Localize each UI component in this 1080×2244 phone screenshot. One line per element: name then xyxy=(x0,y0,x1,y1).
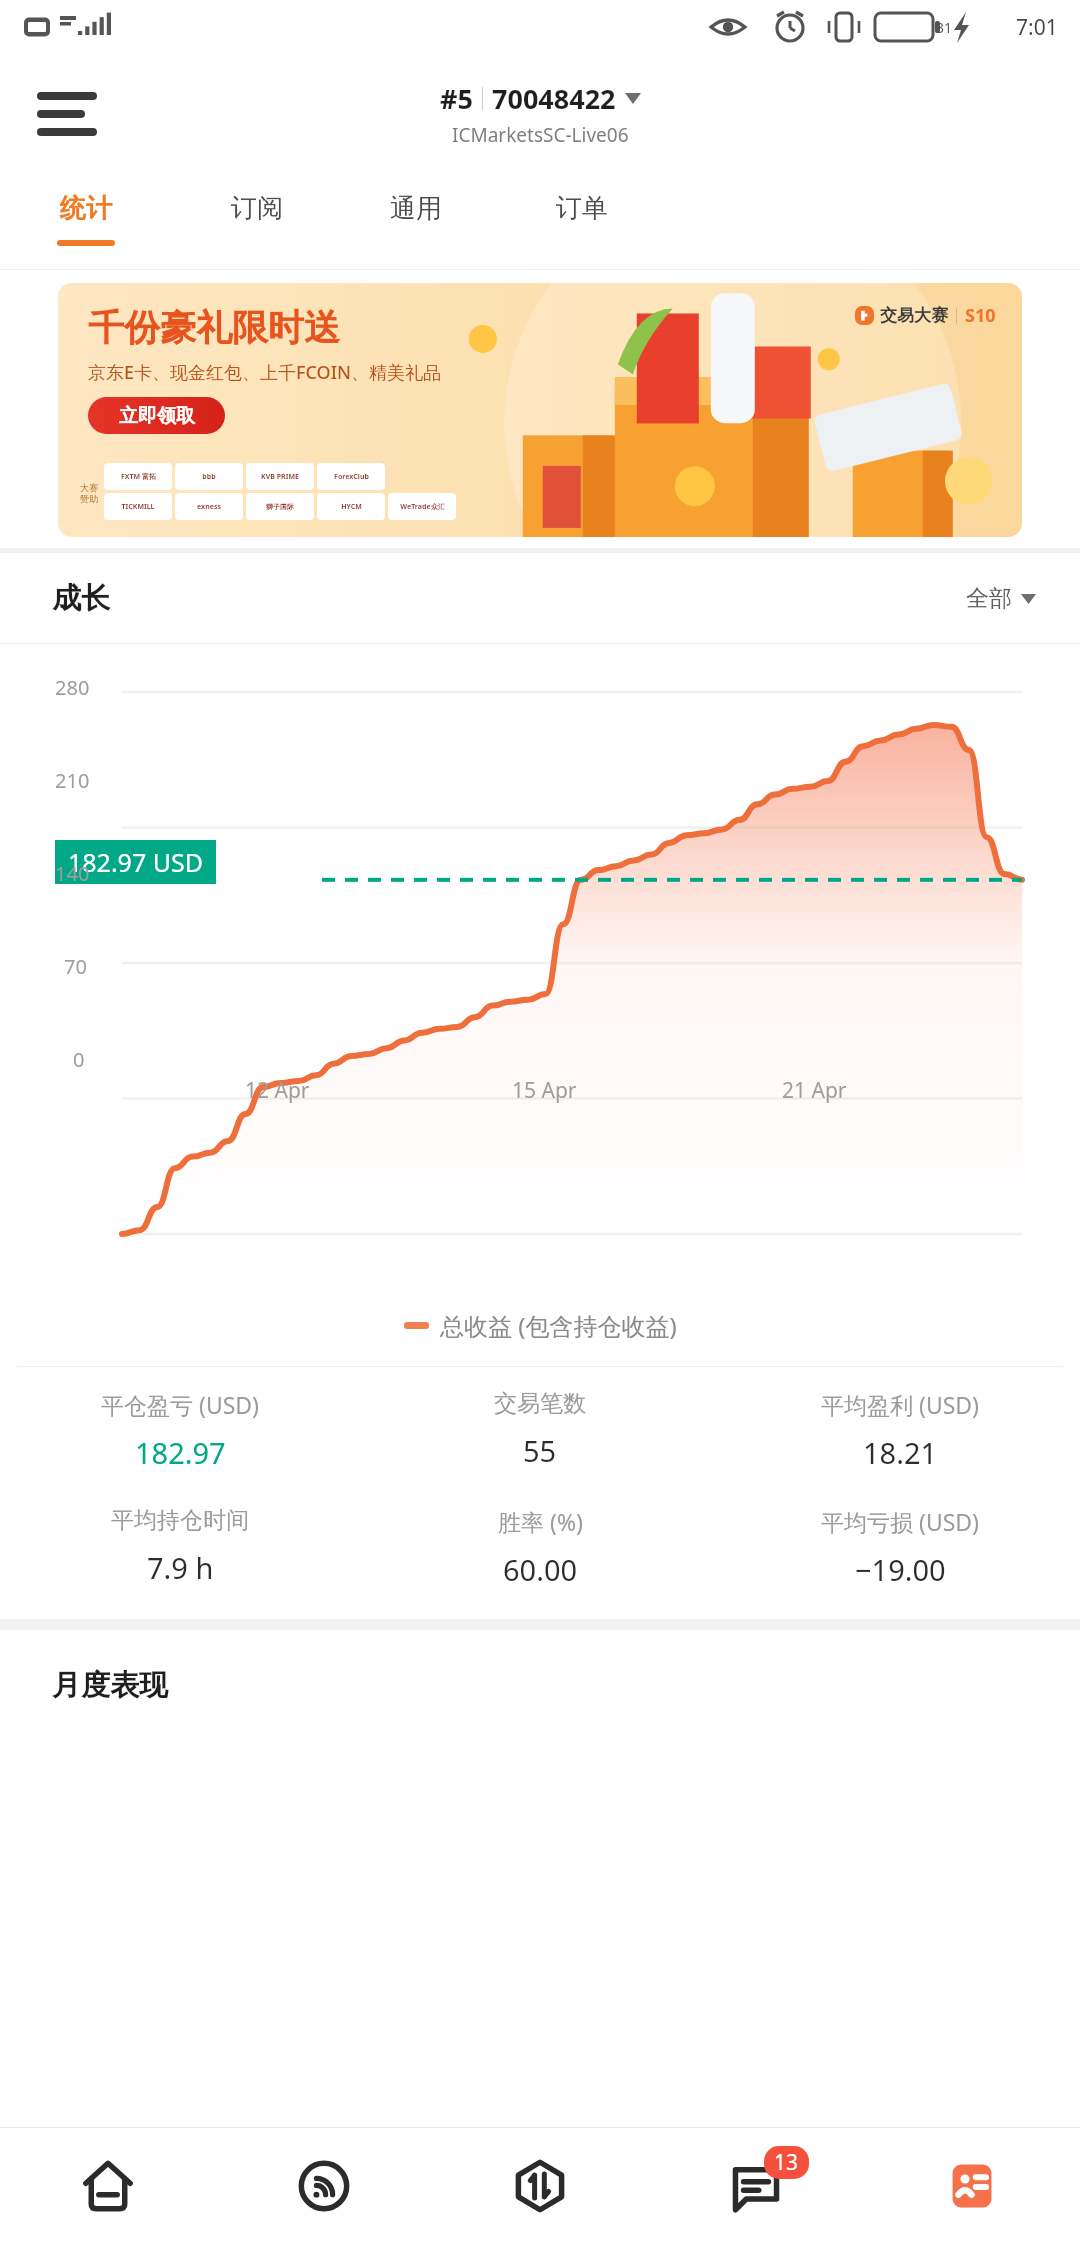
staticText: 平均盈利 (USD) xyxy=(821,1389,980,1420)
staticText: 獅子国际 xyxy=(266,502,294,511)
button[interactable]: #5 xyxy=(440,80,641,148)
staticText: 平均持仓时间 xyxy=(111,1506,249,1535)
button[interactable]: 统计 xyxy=(34,174,138,269)
staticText: 成长 xyxy=(52,580,110,617)
staticText: 订单 xyxy=(556,192,608,225)
staticText: 70048422 xyxy=(492,80,616,117)
staticText: #5 xyxy=(440,80,473,117)
button[interactable]: 千份豪礼限时送 xyxy=(58,283,1022,537)
staticText: 月度表现 xyxy=(52,1667,168,1704)
staticText: 7:01 xyxy=(1016,13,1058,42)
staticText: 交易大赛 xyxy=(880,305,948,326)
staticText: 全部 xyxy=(966,584,1012,613)
staticText: 立即领取 xyxy=(119,404,195,428)
button[interactable]: 交易笔数 xyxy=(360,1389,720,1470)
staticText: WeTrade众汇 xyxy=(400,502,445,512)
staticText: 13 xyxy=(774,2148,799,2177)
staticText: 京东E卡、现金红包、上千FCOIN、精美礼品 xyxy=(88,360,442,385)
button[interactable]: Home xyxy=(0,2128,216,2244)
button[interactable]: 胜率 (%) xyxy=(360,1506,720,1589)
staticText: 通用 xyxy=(390,192,442,225)
button[interactable]: 订阅 xyxy=(205,174,309,269)
staticText: −19.00 xyxy=(855,1550,946,1589)
staticText: 182.97 USD xyxy=(68,845,203,879)
button[interactable]: 平仓盈亏 (USD) xyxy=(0,1389,360,1472)
staticText: FXTM 富拓 xyxy=(121,472,156,482)
staticText: 7.9 h xyxy=(147,1548,214,1587)
button[interactable]: Trade xyxy=(432,2128,648,2244)
staticText: 胜率 (%) xyxy=(498,1506,583,1537)
staticText: 统计 xyxy=(60,192,112,225)
staticText: 赞助 xyxy=(80,493,98,504)
staticText: HYCM xyxy=(341,502,362,512)
staticText: 280 xyxy=(55,674,90,701)
staticText: ForexClub xyxy=(334,472,369,482)
staticText: 0 xyxy=(73,1046,85,1073)
staticText: 订阅 xyxy=(231,192,283,225)
staticText: 18.21 xyxy=(863,1433,938,1472)
staticText: bbb xyxy=(202,472,216,482)
button[interactable]: 平均持仓时间 xyxy=(0,1506,360,1587)
staticText: ICMarketsSC-Live06 xyxy=(452,122,629,148)
staticText: TICKMILL xyxy=(121,502,155,512)
staticText: KVB PRIME xyxy=(261,472,299,482)
staticText: 60.00 xyxy=(503,1550,578,1589)
staticText: 15 Apr xyxy=(512,1076,577,1105)
button[interactable]: Feed xyxy=(216,2128,432,2244)
staticText: 55 xyxy=(523,1431,557,1470)
button[interactable]: 平均盈利 (USD) xyxy=(720,1389,1080,1472)
button[interactable]: 订单 xyxy=(530,174,634,269)
staticText: 70 xyxy=(64,953,87,980)
staticText: S10 xyxy=(965,303,996,328)
staticText: 182.97 xyxy=(135,1433,226,1472)
staticText: 平均亏损 (USD) xyxy=(821,1506,980,1537)
staticText: 12 Apr xyxy=(245,1076,310,1105)
button[interactable]: 平均亏损 (USD) xyxy=(720,1506,1080,1589)
staticText: 交易笔数 xyxy=(494,1389,586,1418)
button[interactable]: Profile xyxy=(864,2128,1080,2244)
staticText: 210 xyxy=(55,767,90,794)
staticText: 140 xyxy=(55,860,90,887)
staticText: 大赛 xyxy=(80,482,98,493)
staticText: 千份豪礼限时送 xyxy=(88,305,340,350)
staticText: 31 xyxy=(936,18,953,37)
button[interactable]: 通用 xyxy=(364,174,468,269)
staticText: exness xyxy=(197,502,221,512)
staticText: 总收益 (包含持仓收益) xyxy=(440,1309,677,1342)
button[interactable]: 全部 xyxy=(966,584,1036,613)
button[interactable]: Messages xyxy=(648,2128,864,2244)
staticText: 平仓盈亏 (USD) xyxy=(101,1389,260,1420)
button[interactable]: Menu xyxy=(36,83,98,145)
button[interactable]: 立即领取 xyxy=(88,397,225,434)
staticText: 21 Apr xyxy=(782,1076,847,1105)
button[interactable]: 182.97 USD xyxy=(55,840,216,884)
